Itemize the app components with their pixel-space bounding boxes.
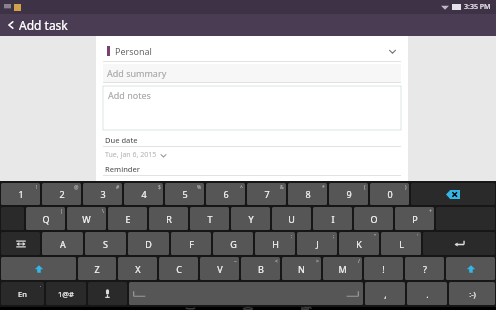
staticText: R bbox=[166, 213, 172, 225]
staticText: 1@# bbox=[58, 289, 74, 299]
button[interactable]: 1@# bbox=[46, 282, 86, 305]
other: Back bbox=[6, 20, 16, 30]
button[interactable]: enter bbox=[423, 232, 495, 255]
staticText: H bbox=[272, 238, 279, 250]
staticText: Add task bbox=[19, 17, 68, 33]
staticText: + bbox=[429, 208, 432, 215]
button[interactable]: 5 bbox=[165, 183, 204, 205]
button[interactable]: . bbox=[407, 282, 447, 305]
button[interactable]: W bbox=[67, 207, 106, 230]
staticText: 3:35 PM bbox=[464, 2, 491, 12]
button[interactable]: F bbox=[171, 232, 211, 255]
staticText: 8 bbox=[305, 188, 311, 200]
button[interactable]: backspace bbox=[411, 183, 495, 205]
staticText: B bbox=[258, 263, 264, 275]
staticText: T bbox=[207, 213, 213, 225]
staticText: Personal bbox=[115, 45, 152, 57]
staticText: # bbox=[116, 184, 120, 191]
button[interactable]: 0 bbox=[370, 183, 409, 205]
button[interactable]: R bbox=[149, 207, 188, 230]
staticText: * bbox=[322, 184, 325, 191]
button[interactable]: Back bbox=[161, 307, 219, 310]
staticText: Add summary bbox=[107, 67, 167, 79]
button[interactable]: shift bbox=[1, 257, 76, 280]
staticText: E bbox=[125, 213, 131, 225]
button[interactable]: 7 bbox=[247, 183, 286, 205]
staticText: 1 bbox=[18, 188, 24, 200]
button[interactable]: M bbox=[323, 257, 362, 280]
staticText: U bbox=[288, 213, 295, 225]
button[interactable]: Y bbox=[231, 207, 270, 230]
button[interactable]: P bbox=[395, 207, 434, 230]
button[interactable]: tab bbox=[1, 232, 40, 255]
button[interactable]: Add notes bbox=[103, 86, 401, 130]
button[interactable]: En bbox=[1, 282, 44, 305]
staticText: I bbox=[331, 213, 335, 225]
button[interactable]: E bbox=[108, 207, 147, 230]
button[interactable]: shift bbox=[446, 257, 495, 280]
staticText: \ bbox=[102, 208, 104, 215]
button[interactable]: Home bbox=[219, 307, 277, 310]
staticText: F bbox=[189, 238, 194, 250]
button[interactable]: 3 bbox=[83, 183, 122, 205]
button[interactable]: Q bbox=[26, 207, 65, 230]
button[interactable]: L bbox=[381, 232, 421, 255]
staticText: < bbox=[275, 258, 278, 265]
staticText: > bbox=[316, 258, 319, 265]
button[interactable]: , bbox=[365, 282, 405, 305]
staticText: ^ bbox=[240, 184, 243, 191]
staticText: K bbox=[356, 238, 362, 250]
button[interactable]: 4 bbox=[124, 183, 163, 205]
button[interactable]: Add summary bbox=[103, 64, 401, 82]
staticText: ! bbox=[382, 263, 385, 275]
button[interactable]: D bbox=[128, 232, 169, 255]
button[interactable]: B bbox=[241, 257, 280, 280]
button[interactable]: ! bbox=[364, 257, 403, 280]
staticText: C bbox=[176, 263, 182, 275]
staticText: ' bbox=[417, 233, 419, 240]
button[interactable]: V bbox=[200, 257, 239, 280]
staticText: :-) bbox=[469, 289, 476, 299]
other: Expand category bbox=[388, 47, 397, 56]
button[interactable]: I bbox=[313, 207, 352, 230]
button[interactable]: 1 bbox=[1, 183, 40, 205]
button[interactable]: O bbox=[354, 207, 393, 230]
button[interactable]: K bbox=[339, 232, 379, 255]
button[interactable]: U bbox=[272, 207, 311, 230]
button[interactable]: S bbox=[85, 232, 126, 255]
button[interactable]: J bbox=[297, 232, 337, 255]
button[interactable]: Recent apps bbox=[277, 307, 335, 310]
staticText: 7 bbox=[264, 188, 270, 200]
button[interactable]: Tue, Jan 6, 2015 bbox=[103, 150, 167, 160]
staticText: % bbox=[197, 184, 202, 191]
button[interactable]: mic bbox=[88, 282, 127, 305]
staticText: 0 bbox=[387, 188, 393, 200]
staticText: @ bbox=[74, 184, 79, 191]
button[interactable]: 8 bbox=[288, 183, 327, 205]
staticText: S bbox=[103, 238, 108, 250]
button[interactable]: Z bbox=[78, 257, 116, 280]
button[interactable]: 9 bbox=[329, 183, 368, 205]
button[interactable]: N bbox=[282, 257, 321, 280]
staticText: M bbox=[338, 263, 347, 275]
staticText: X bbox=[135, 263, 141, 275]
button[interactable]: C bbox=[159, 257, 198, 280]
button[interactable]: A bbox=[42, 232, 83, 255]
button[interactable]: X bbox=[118, 257, 157, 280]
button[interactable]: :-) bbox=[449, 282, 495, 305]
staticText: Add notes bbox=[108, 89, 151, 101]
button[interactable]: H bbox=[255, 232, 295, 255]
button[interactable]: 2 bbox=[42, 183, 81, 205]
button[interactable]: G bbox=[213, 232, 253, 255]
staticText: D bbox=[145, 238, 152, 250]
button[interactable]: space bbox=[129, 282, 363, 305]
button[interactable]: 6 bbox=[206, 183, 245, 205]
button[interactable]: Back bbox=[0, 14, 496, 36]
button[interactable]: T bbox=[190, 207, 229, 230]
button[interactable]: Personal bbox=[103, 41, 401, 61]
staticText: · bbox=[40, 283, 42, 290]
button[interactable]: ? bbox=[405, 257, 444, 280]
staticText: O bbox=[370, 213, 378, 225]
